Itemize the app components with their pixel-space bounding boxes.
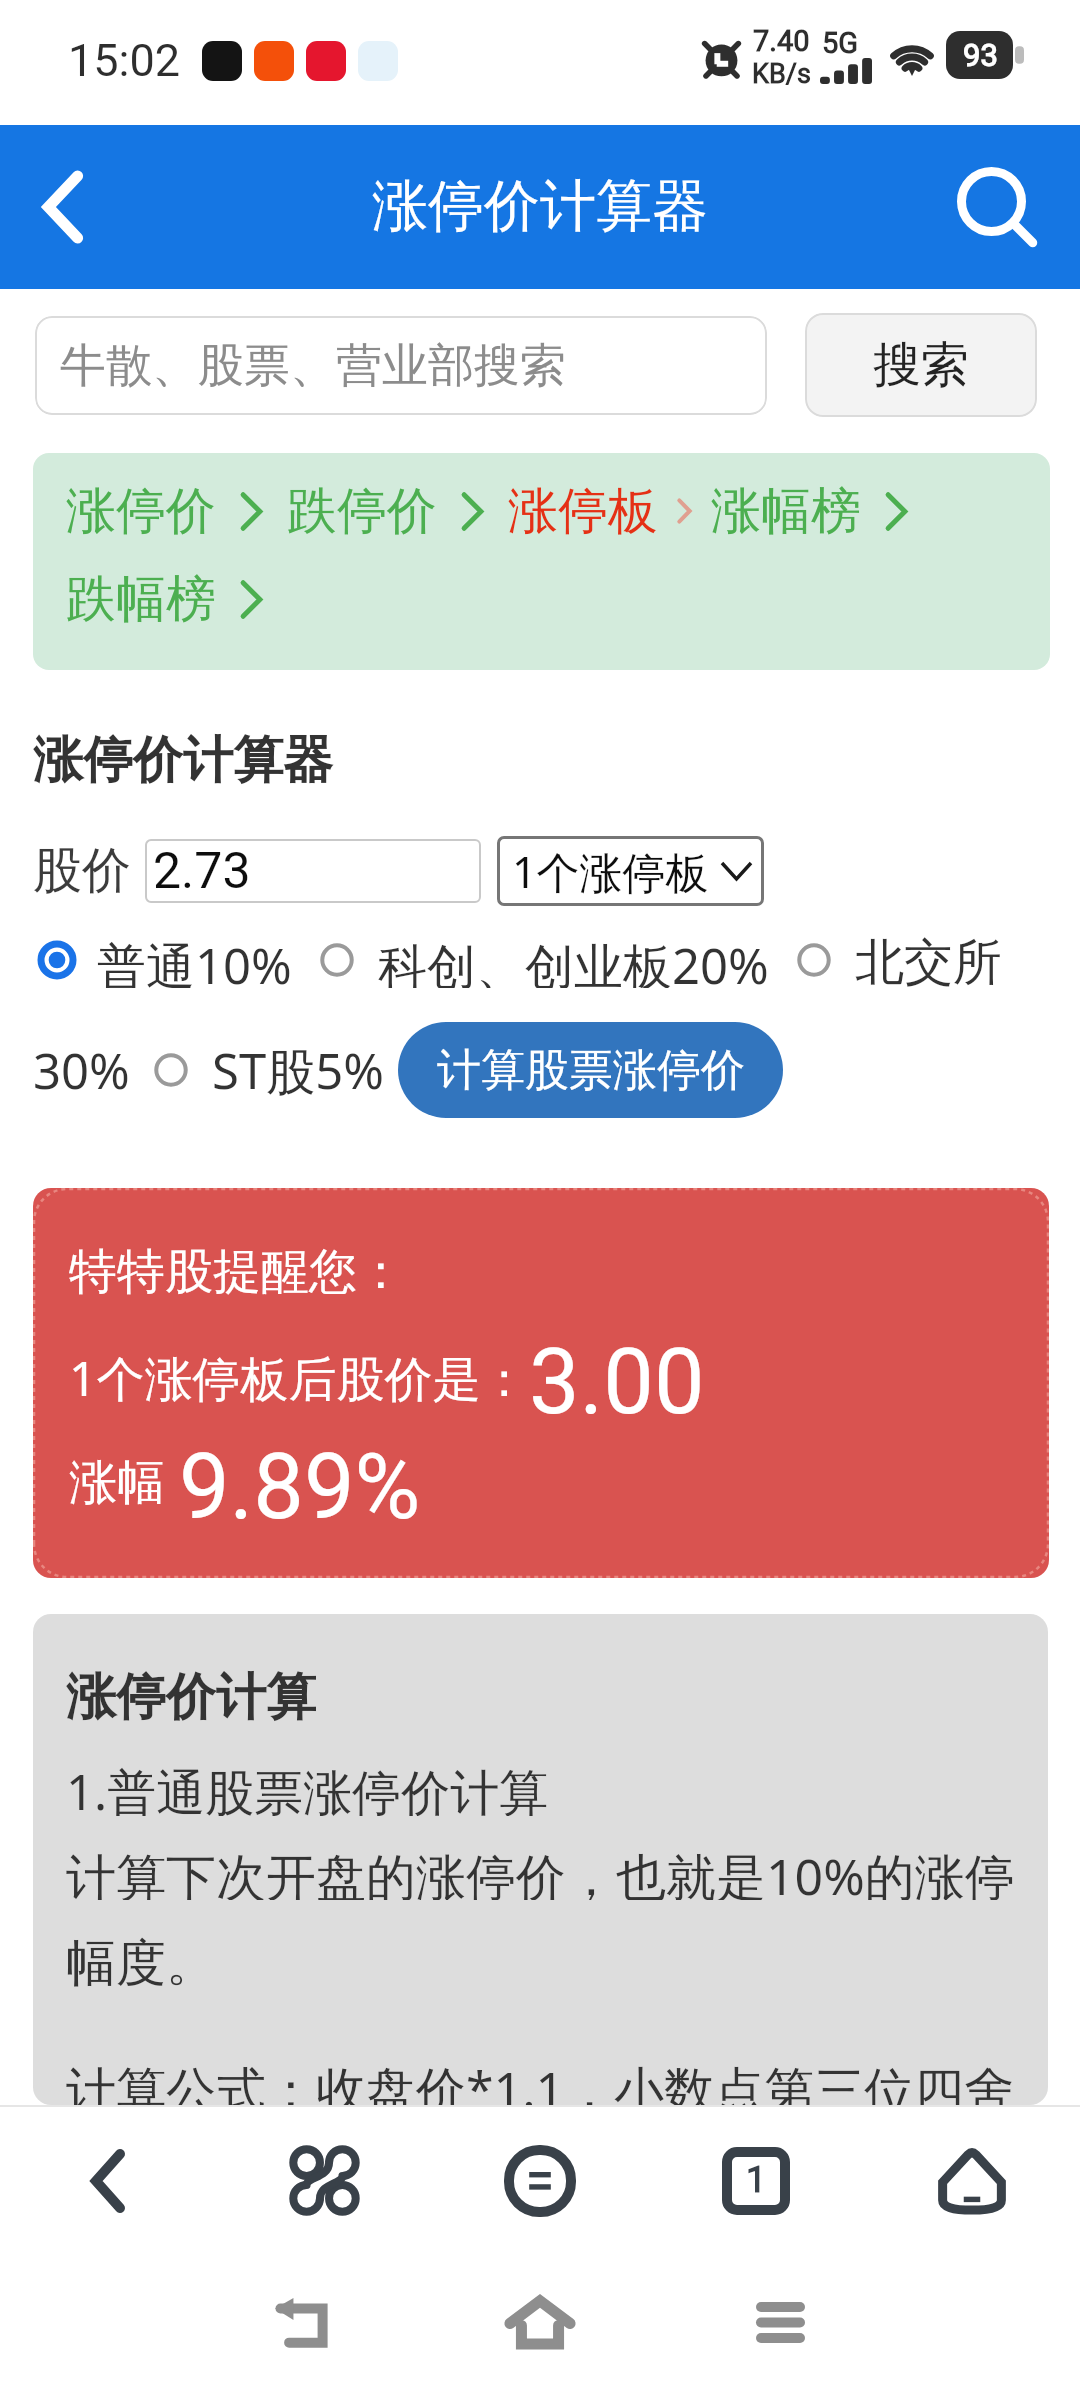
staticText: 涨幅榜 (711, 480, 861, 543)
staticText: 特特股提醒您： (69, 1242, 405, 1298)
button[interactable]: 涨幅榜 (711, 480, 861, 543)
button[interactable]: Search (954, 164, 1040, 250)
staticText: 搜索 (873, 335, 969, 395)
staticText: 计算公式：收盘价*1.1，小数点第三位四舍 (66, 2055, 1015, 2105)
button[interactable]: Apps (216, 2109, 432, 2254)
button[interactable]: 涨停板 (508, 480, 658, 543)
staticText: ST股5% (212, 1037, 384, 1104)
staticText: 涨停价 (66, 480, 216, 543)
button[interactable]: Tabs (648, 2109, 864, 2254)
button[interactable] (318, 941, 356, 979)
staticText: 9.89% (179, 1435, 421, 1527)
button[interactable]: 涨停价 (66, 480, 216, 543)
staticText: 1 (746, 2159, 767, 2201)
staticText: 5G (822, 26, 859, 60)
staticText: 幅度。 (66, 1932, 216, 1990)
button[interactable] (795, 941, 833, 979)
staticText: 涨停板 (508, 480, 658, 543)
button[interactable]: Back (0, 2109, 216, 2254)
staticText: 30% (33, 1037, 130, 1104)
staticText: 跌停价 (287, 480, 437, 543)
staticText: 2.73 (153, 842, 251, 901)
button[interactable]: 跌幅榜 (66, 568, 216, 631)
button[interactable]: Home (480, 2262, 600, 2382)
staticText: 涨停价计算 (66, 1666, 316, 1724)
staticText: 北交所 (855, 932, 1002, 988)
staticText: 1.普通股票涨停价计算 (66, 1758, 549, 1816)
staticText: 跌幅榜 (66, 568, 216, 631)
button[interactable]: 2.73 (145, 839, 481, 903)
button[interactable]: Menu (432, 2109, 648, 2254)
button[interactable] (38, 941, 76, 979)
staticText: 1个涨停板 (512, 842, 709, 901)
staticText: 3.00 (529, 1330, 705, 1422)
staticText: 计算下次开盘的涨停价，也就是10%的涨停 (66, 1842, 1015, 1900)
staticText: 科创、创业板20% (378, 932, 769, 988)
staticText: 1个涨停板后股价是： (69, 1345, 529, 1411)
staticText: 普通10% (97, 932, 292, 988)
staticText: 15:02 (68, 34, 181, 87)
button[interactable]: 计算股票涨停价 (398, 1022, 783, 1118)
staticText: 计算股票涨停价 (437, 1043, 745, 1098)
staticText: 涨幅 (69, 1453, 165, 1513)
staticText: 涨停价计算器 (33, 729, 333, 792)
button[interactable]: 牛散、股票、营业部搜索 (35, 316, 767, 415)
button[interactable]: Back (16, 160, 110, 254)
button[interactable]: Home (864, 2109, 1080, 2254)
button[interactable]: 搜索 (805, 313, 1037, 417)
button[interactable]: Recents (720, 2262, 840, 2382)
button[interactable]: 1个涨停板 (497, 836, 764, 906)
button[interactable]: Back (241, 2262, 361, 2382)
button[interactable] (152, 1051, 190, 1089)
staticText: KB/s (752, 58, 811, 90)
staticText: 93 (963, 37, 998, 73)
staticText: 7.40 (753, 24, 810, 58)
staticText: 牛散、股票、营业部搜索 (60, 337, 566, 395)
button[interactable]: 跌停价 (287, 480, 437, 543)
staticText: 涨停价计算器 (372, 171, 708, 242)
staticText: 股价 (33, 840, 131, 902)
